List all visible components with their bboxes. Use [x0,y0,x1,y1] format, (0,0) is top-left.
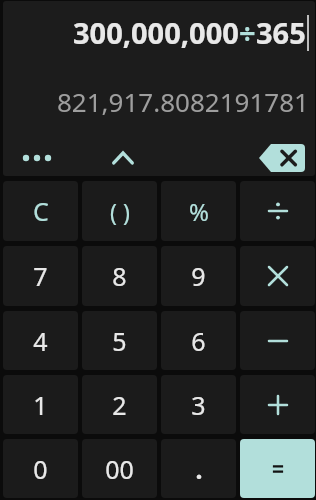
staticText: 9 [191,259,206,293]
staticText: 8 [112,259,127,293]
button[interactable]: 8 [82,246,157,306]
button[interactable]: More options [17,139,57,176]
button[interactable]: Add [240,375,315,434]
staticText: ( ) [110,196,130,227]
button[interactable]: . [161,439,236,498]
staticText: 0 [33,452,48,486]
button[interactable]: Expand history [103,139,143,176]
button[interactable]: 7 [3,246,78,306]
button[interactable]: 821,917.8082191781 [3,63,315,139]
button[interactable]: Backspace [259,144,305,172]
staticText: 3 [191,388,206,422]
button[interactable]: 300,000,000 [3,1,315,63]
staticText: 4 [33,324,48,358]
button[interactable]: Multiply [240,246,315,306]
staticText: 300,000,000 [73,13,239,52]
button[interactable]: Equals [240,439,315,498]
staticText: 2 [112,388,127,422]
staticText: 6 [191,324,206,358]
button[interactable]: 0 [3,439,78,498]
button[interactable]: ( ) [82,181,157,241]
button[interactable]: C [3,181,78,241]
button[interactable]: Subtract [240,311,315,370]
staticText: 00 [105,452,134,486]
button[interactable]: 9 [161,246,236,306]
button[interactable]: 1 [3,375,78,434]
staticText: 821,917.8082191781 [57,84,309,119]
button[interactable]: 5 [82,311,157,370]
staticText: 7 [33,259,48,293]
staticText: % [189,195,209,228]
button[interactable]: 4 [3,311,78,370]
button[interactable]: 00 [82,439,157,498]
staticText: 365 [256,13,306,52]
staticText: 5 [112,324,127,358]
staticText: . [195,452,203,486]
staticText: C [33,194,49,228]
staticText: 1 [33,388,48,422]
button[interactable]: 6 [161,311,236,370]
button[interactable]: 2 [82,375,157,434]
staticText: ÷ [239,13,256,52]
button[interactable]: % [161,181,236,241]
button[interactable]: Divide [240,181,315,241]
button[interactable]: 3 [161,375,236,434]
